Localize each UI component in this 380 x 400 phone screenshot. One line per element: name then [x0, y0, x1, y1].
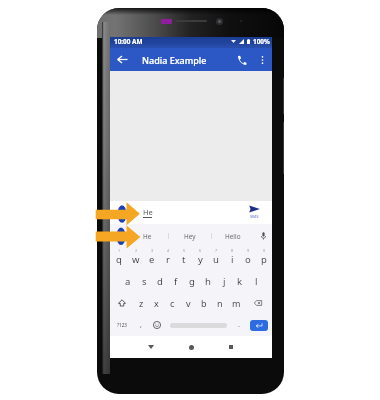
- button[interactable]: Emoji: [148, 314, 165, 336]
- button[interactable]: Back: [110, 48, 135, 71]
- staticText: 2: [135, 248, 138, 253]
- button[interactable]: ,: [133, 314, 148, 336]
- staticText: v: [186, 297, 191, 309]
- staticText: 1: [118, 248, 121, 253]
- staticText: h: [205, 275, 211, 288]
- button[interactable]: Home: [171, 336, 211, 358]
- button[interactable]: v: [180, 292, 196, 314]
- staticText: t: [182, 253, 186, 266]
- staticText: e: [149, 253, 155, 266]
- button[interactable]: d: [152, 270, 168, 292]
- staticText: Nadia Example: [142, 54, 207, 66]
- staticText: d: [157, 275, 163, 288]
- button[interactable]: He: [110, 224, 168, 248]
- button[interactable]: Hey: [169, 224, 211, 248]
- button[interactable]: Voice input: [254, 224, 272, 248]
- button[interactable]: 8: [224, 248, 240, 270]
- staticText: j: [223, 275, 226, 288]
- button[interactable]: 6: [192, 248, 208, 270]
- staticText: n: [217, 297, 223, 309]
- staticText: 6: [199, 248, 202, 253]
- button[interactable]: Backspace: [244, 292, 272, 314]
- staticText: 0: [263, 248, 266, 253]
- button[interactable]: a: [119, 270, 136, 292]
- button[interactable]: Symbols: [110, 314, 133, 336]
- button[interactable]: 7: [208, 248, 224, 270]
- staticText: p: [261, 253, 267, 266]
- staticText: 7: [215, 248, 218, 253]
- staticText: .: [238, 320, 240, 330]
- button[interactable]: 0: [256, 248, 272, 270]
- button[interactable]: .: [232, 314, 246, 336]
- staticText: x: [154, 297, 159, 309]
- staticText: Hello: [225, 232, 241, 241]
- staticText: y: [198, 253, 203, 266]
- staticText: 4: [167, 248, 170, 253]
- button[interactable]: x: [149, 292, 164, 314]
- button[interactable]: j: [216, 270, 232, 292]
- staticText: ?123: [117, 322, 127, 328]
- staticText: b: [201, 297, 207, 309]
- staticText: 5: [183, 248, 186, 253]
- button[interactable]: k: [232, 270, 248, 292]
- button[interactable]: n: [212, 292, 228, 314]
- staticText: k: [237, 275, 243, 288]
- staticText: SMS: [250, 214, 259, 220]
- button[interactable]: c: [164, 292, 180, 314]
- staticText: He: [143, 207, 153, 217]
- staticText: o: [245, 253, 251, 266]
- button[interactable]: Space: [165, 314, 232, 336]
- staticText: w: [132, 253, 140, 266]
- staticText: r: [166, 253, 170, 266]
- button[interactable]: 2: [127, 248, 144, 270]
- staticText: f: [174, 275, 178, 288]
- staticText: m: [232, 297, 241, 309]
- button[interactable]: 1: [110, 248, 127, 270]
- button[interactable]: Back: [131, 336, 171, 358]
- button[interactable]: 4: [160, 248, 176, 270]
- staticText: 8: [231, 248, 234, 253]
- staticText: c: [170, 297, 175, 309]
- staticText: 9: [247, 248, 250, 253]
- staticText: u: [213, 253, 219, 266]
- staticText: ,: [140, 320, 142, 330]
- button[interactable]: m: [228, 292, 244, 314]
- staticText: g: [189, 275, 195, 288]
- button[interactable]: s: [136, 270, 152, 292]
- staticText: q: [116, 253, 122, 266]
- button[interactable]: f: [168, 270, 184, 292]
- button[interactable]: 3: [144, 248, 160, 270]
- staticText: Hey: [184, 232, 196, 241]
- staticText: s: [142, 275, 147, 288]
- button[interactable]: 5: [176, 248, 192, 270]
- button[interactable]: Recents: [211, 336, 251, 358]
- button[interactable]: Shift: [110, 292, 134, 314]
- staticText: a: [125, 275, 131, 288]
- staticText: He: [143, 232, 152, 241]
- staticText: z: [139, 297, 144, 309]
- staticText: 100%: [253, 37, 270, 45]
- staticText: i: [231, 253, 234, 266]
- staticText: l: [255, 275, 258, 288]
- button[interactable]: More options: [253, 48, 272, 71]
- staticText: 10:00 AM: [114, 37, 143, 45]
- staticText: 3: [151, 248, 154, 253]
- button[interactable]: 9: [240, 248, 256, 270]
- button[interactable]: Hello: [212, 224, 254, 248]
- button[interactable]: b: [196, 292, 212, 314]
- button[interactable]: Send SMS: [241, 201, 268, 224]
- button[interactable]: g: [184, 270, 200, 292]
- button[interactable]: l: [248, 270, 264, 292]
- button[interactable]: Enter: [246, 314, 272, 336]
- button[interactable]: z: [134, 292, 149, 314]
- button[interactable]: Call: [231, 48, 253, 71]
- button[interactable]: h: [200, 270, 216, 292]
